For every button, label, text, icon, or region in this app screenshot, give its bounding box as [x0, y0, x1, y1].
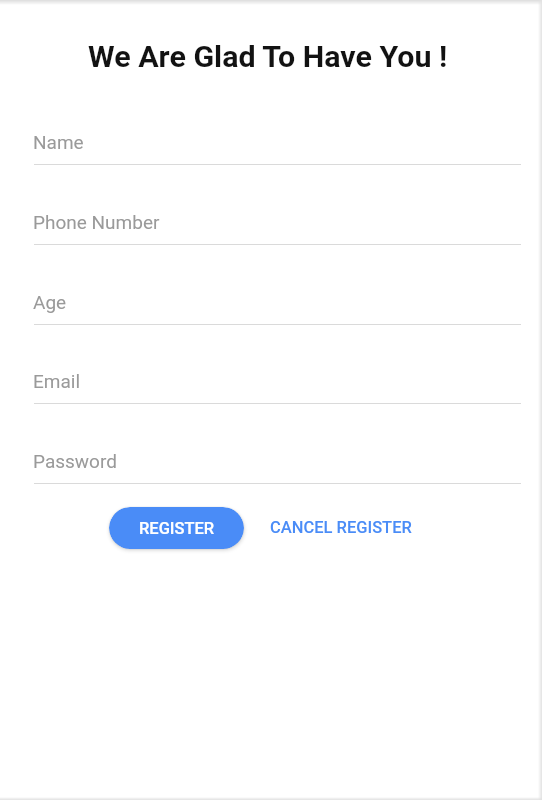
button[interactable]: CANCEL REGISTER — [254, 507, 428, 548]
button[interactable]: Name — [33, 131, 521, 165]
staticText: REGISTER — [139, 519, 215, 538]
button[interactable]: Email — [33, 370, 521, 404]
button[interactable]: REGISTER — [109, 507, 244, 549]
button[interactable]: Password — [33, 450, 521, 484]
staticText: Password — [33, 450, 117, 472]
staticText: Phone Number — [33, 211, 160, 233]
staticText: Name — [33, 131, 84, 153]
staticText: We Are Glad To Have You ! — [88, 39, 448, 75]
staticText: Age — [33, 291, 67, 313]
button[interactable]: Phone Number — [33, 211, 521, 245]
staticText: CANCEL REGISTER — [270, 518, 412, 537]
button[interactable]: Age — [33, 291, 521, 325]
staticText: Email — [33, 370, 81, 392]
